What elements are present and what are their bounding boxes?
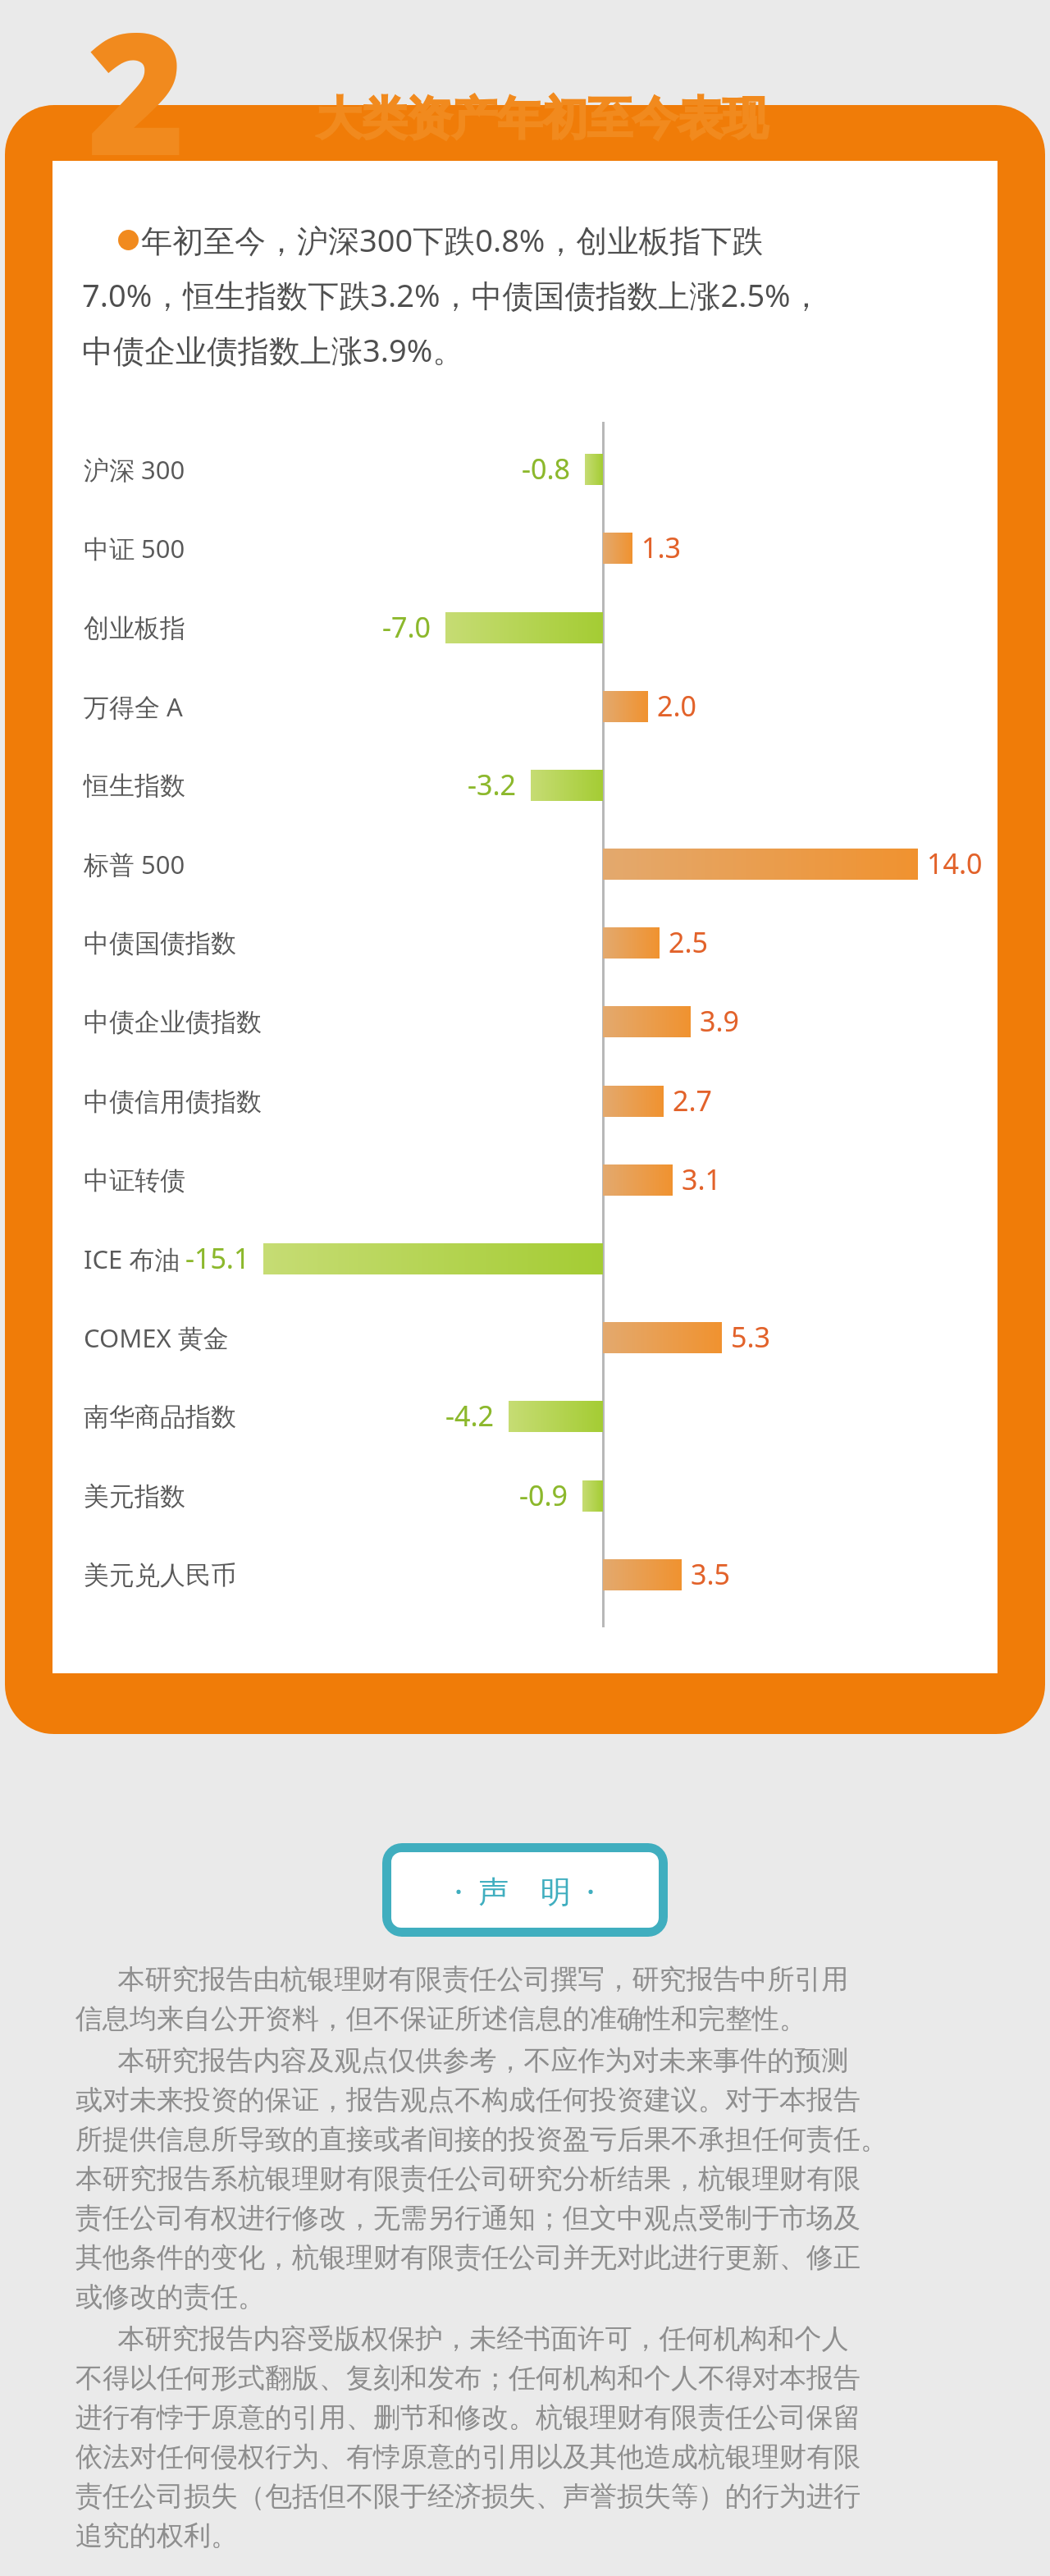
staticText: 本研究报告内容受版权保护，未经书面许可，任何机构和个人 <box>75 2319 849 2356</box>
staticText: 其他条件的变化，杭银理财有限责任公司并无对此进行更新、修正 <box>75 2240 861 2275</box>
staticText: 南华商品指数 <box>84 1401 236 1433</box>
staticText: -15.1 <box>185 1239 250 1277</box>
button[interactable]: 中债国债指数 <box>84 921 236 965</box>
staticText: 3.5 <box>691 1555 731 1593</box>
staticText: 5.3 <box>731 1318 771 1356</box>
staticText: 责任公司有权进行修改，无需另行通知；但文中观点受制于市场及 <box>75 2201 861 2235</box>
staticText: 2.5 <box>669 923 709 961</box>
staticText: 创业板指 <box>84 612 185 644</box>
staticText: 万得全 A <box>84 689 183 724</box>
staticText: 本研究报告由杭银理财有限责任公司撰写，研究报告中所引用 <box>75 1960 849 1997</box>
staticText: 所提供信息所导致的直接或者间接的投资盈亏后果不承担任何责任。 <box>75 2122 888 2157</box>
button[interactable]: · 声 明 · <box>391 1852 659 1928</box>
button[interactable]: COMEX 黄金 <box>84 1315 229 1360</box>
staticText: 进行有悖于原意的引用、删节和修改。杭银理财有限责任公司保留 <box>75 2400 861 2435</box>
staticText: 美元指数 <box>84 1480 185 1512</box>
staticText: 不得以任何形式翻版、复刻和发布；任何机构和个人不得对本报告 <box>75 2361 861 2395</box>
staticText: 中证 500 <box>84 531 185 565</box>
button[interactable]: 美元兑人民币 <box>84 1553 236 1597</box>
staticText: ICE 布油 <box>84 1242 180 1276</box>
button[interactable]: ICE 布油 <box>84 1237 180 1281</box>
button[interactable]: 中债企业债指数 <box>84 1000 262 1044</box>
staticText: 责任公司损失（包括但不限于经济损失、声誉损失等）的行为进行 <box>75 2479 861 2514</box>
button[interactable]: 南华商品指数 <box>84 1394 236 1439</box>
staticText: 本研究报告内容及观点仅供参考，不应作为对未来事件的预测 <box>75 2041 849 2078</box>
staticText: 中债企业债指数 <box>84 1006 262 1038</box>
staticText: 恒生指数 <box>84 770 185 802</box>
staticText: 或对未来投资的保证，报告观点不构成任何投资建议。对于本报告 <box>75 2083 861 2117</box>
button[interactable]: 创业板指 <box>84 606 185 650</box>
staticText: 大类资产年初至今表现 <box>317 90 768 147</box>
staticText: · 声 明 · <box>454 1869 596 1911</box>
staticText: 或修改的责任。 <box>75 2280 265 2314</box>
staticText: 信息均来自公开资料，但不保证所述信息的准确性和完整性。 <box>75 2002 806 2036</box>
staticText: 中债信用债指数 <box>84 1086 262 1118</box>
button[interactable]: 万得全 A <box>84 684 183 729</box>
staticText: COMEX 黄金 <box>84 1320 229 1355</box>
staticText: -7.0 <box>382 608 431 646</box>
staticText: 标普 500 <box>84 847 185 881</box>
staticText: 本研究报告系杭银理财有限责任公司研究分析结果，杭银理财有限 <box>75 2162 861 2196</box>
staticText: 中证转债 <box>84 1164 185 1196</box>
staticText: 2.7 <box>673 1082 713 1119</box>
button[interactable]: 中证 500 <box>84 526 185 570</box>
button[interactable]: 中证转债 <box>84 1158 185 1202</box>
staticText: 沪深 300 <box>84 452 185 487</box>
staticText: 3.9 <box>700 1002 740 1040</box>
staticText: -3.2 <box>468 766 516 803</box>
staticText: -0.9 <box>519 1476 568 1514</box>
button[interactable]: 美元指数 <box>84 1474 185 1518</box>
staticText: 7.0%，恒生指数下跌3.2%，中债国债指数上涨2.5%， <box>82 273 822 316</box>
staticText: 14.0 <box>927 844 983 882</box>
staticText: -4.2 <box>445 1397 494 1434</box>
button[interactable]: 恒生指数 <box>84 763 185 808</box>
staticText: 依法对任何侵权行为、有悖原意的引用以及其他造成杭银理财有限 <box>75 2440 861 2474</box>
staticText: 年初至今，沪深300下跌0.8%，创业板指下跌 <box>141 218 764 261</box>
staticText: 3.1 <box>682 1160 722 1198</box>
staticText: 2.0 <box>657 687 697 725</box>
button[interactable]: 标普 500 <box>84 842 185 886</box>
staticText: 中债企业债指数上涨3.9%。 <box>82 328 464 371</box>
staticText: 美元兑人民币 <box>84 1559 236 1591</box>
staticText: -0.8 <box>522 450 570 487</box>
button[interactable]: 沪深 300 <box>84 447 185 492</box>
button[interactable]: 中债信用债指数 <box>84 1079 262 1123</box>
staticText: 1.3 <box>641 528 682 566</box>
staticText: 中债国债指数 <box>84 927 236 959</box>
staticText: 追究的权利。 <box>75 2519 238 2553</box>
staticText: 2 <box>87 0 186 204</box>
